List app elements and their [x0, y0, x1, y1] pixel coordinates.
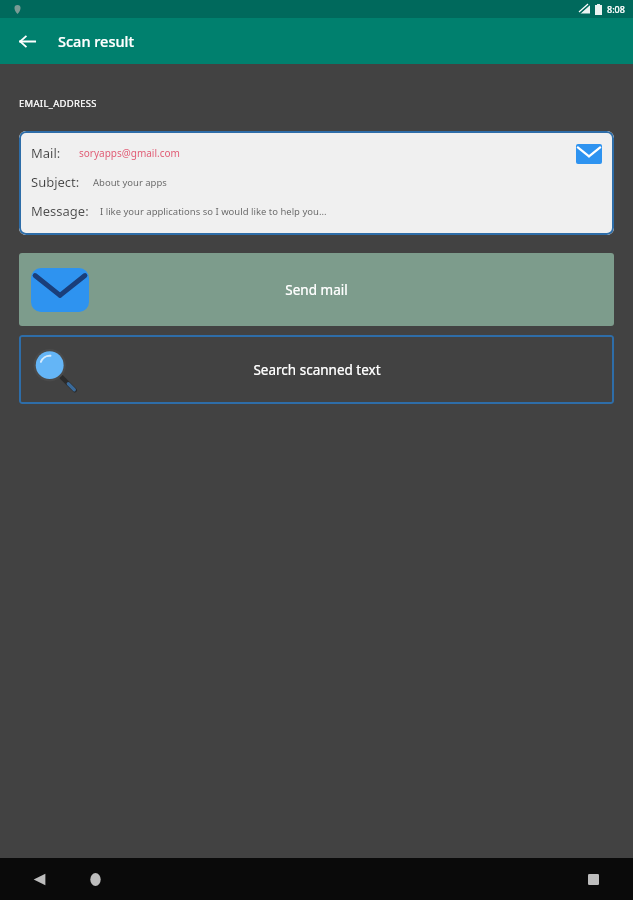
- staticText: Scan result: [58, 31, 135, 51]
- staticText: Send mail: [285, 281, 348, 299]
- button[interactable]: Back: [24, 864, 54, 894]
- button[interactable]: Recent apps: [578, 864, 608, 894]
- staticText: Subject:: [31, 173, 80, 191]
- button[interactable]: Search scanned text: [19, 335, 614, 404]
- staticText: About your apps: [93, 176, 167, 189]
- staticText: 8:08: [607, 3, 625, 15]
- button[interactable]: Send mail: [19, 253, 614, 326]
- staticText: Message:: [31, 202, 89, 220]
- staticText: Search scanned text: [253, 361, 381, 379]
- button[interactable]: Mail: [576, 144, 602, 164]
- staticText: Mail:: [31, 144, 61, 162]
- staticText: soryapps@gmail.com: [79, 146, 180, 160]
- staticText: I like your applications so I would like…: [100, 205, 327, 218]
- button[interactable]: Back: [11, 25, 43, 57]
- button[interactable]: Mail:: [19, 131, 614, 235]
- staticText: EMAIL_ADDRESS: [19, 97, 97, 110]
- button[interactable]: Home: [80, 864, 110, 894]
